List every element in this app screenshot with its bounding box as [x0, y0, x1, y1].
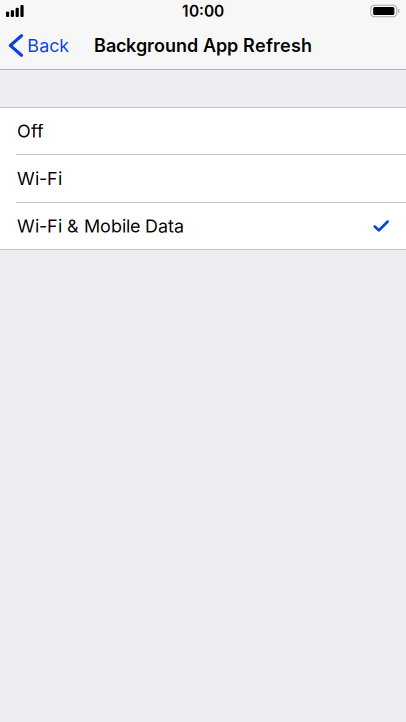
- staticText: Off: [17, 120, 44, 142]
- button[interactable]: Wi-Fi: [0, 155, 406, 202]
- staticText: Back: [27, 35, 69, 56]
- button[interactable]: Back: [0, 28, 77, 63]
- button[interactable]: Wi-Fi & Mobile Data: [0, 203, 406, 249]
- staticText: Wi-Fi & Mobile Data: [17, 215, 184, 237]
- staticText: Wi-Fi: [17, 168, 62, 189]
- button[interactable]: Off: [0, 108, 406, 154]
- staticText: Background App Refresh: [94, 35, 312, 56]
- staticText: 10:00: [182, 2, 224, 20]
